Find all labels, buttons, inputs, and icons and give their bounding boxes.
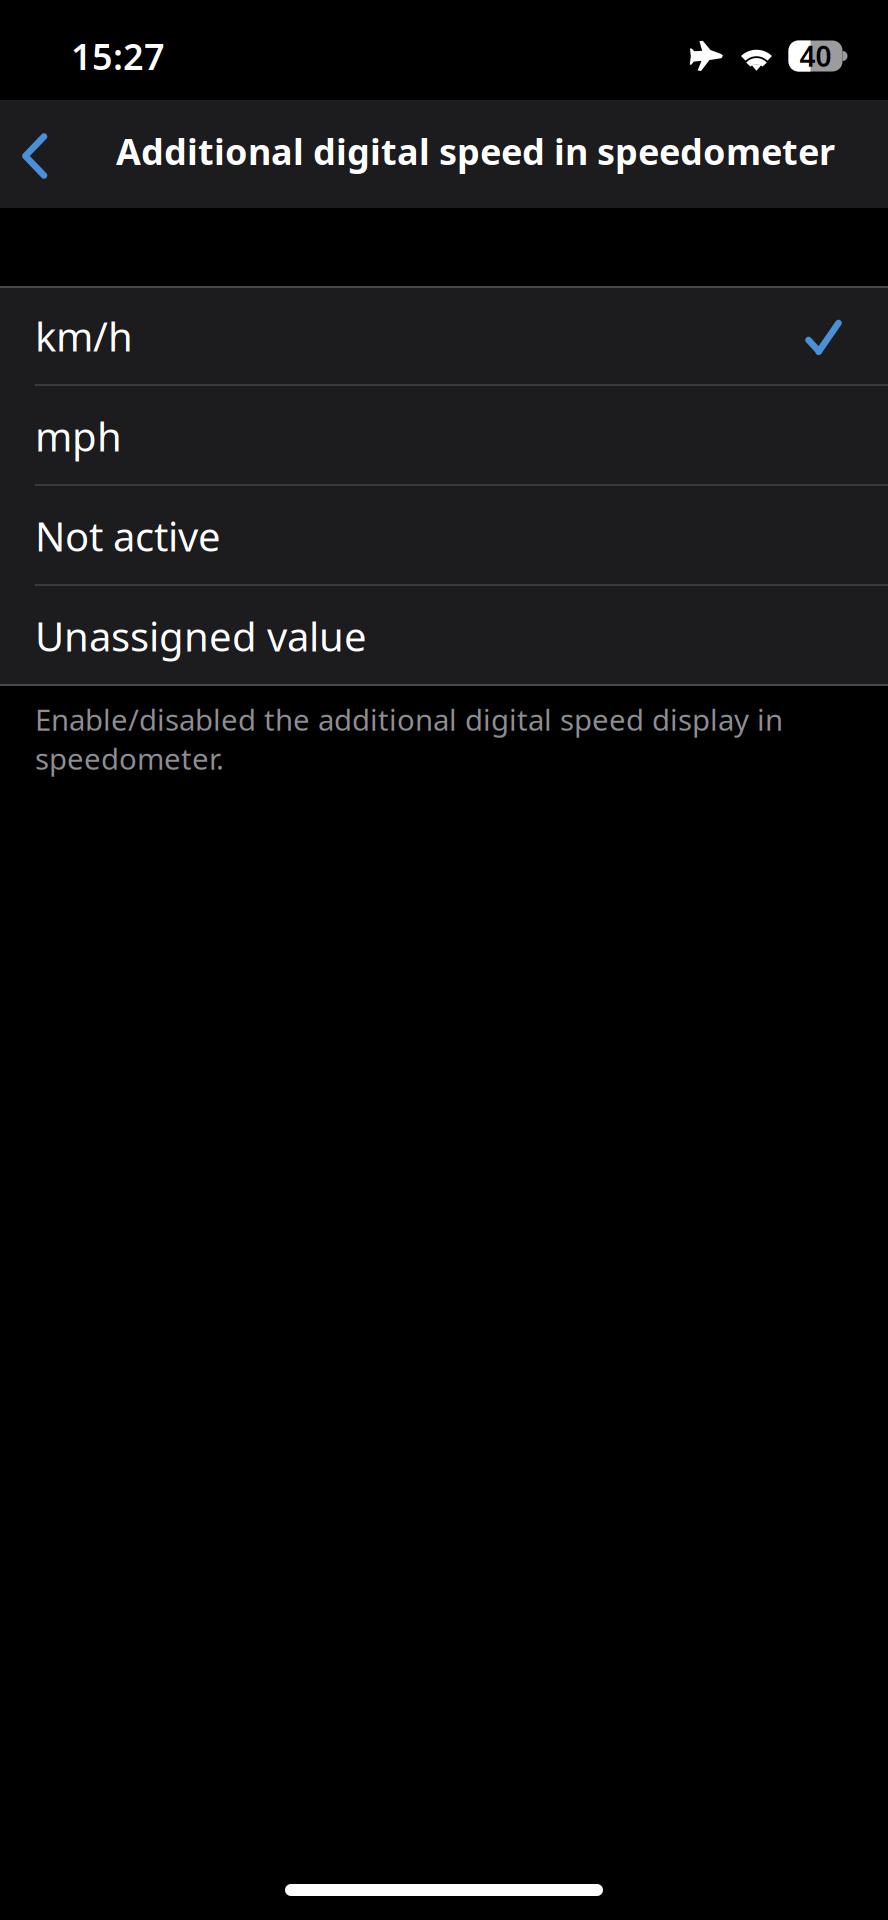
- button[interactable]: Back: [0, 100, 116, 208]
- staticText: Additional digital speed in speedometer: [116, 127, 835, 175]
- button[interactable]: mph: [0, 386, 888, 486]
- staticText: Unassigned value: [35, 609, 367, 662]
- staticText: 40: [799, 37, 831, 75]
- staticText: Not active: [35, 509, 221, 562]
- staticText: 15:27: [71, 32, 165, 80]
- button[interactable]: Not active: [0, 486, 888, 586]
- button[interactable]: Unassigned value: [0, 586, 888, 686]
- staticText: km/h: [35, 309, 133, 362]
- staticText: Enable/disabled the additional digital s…: [35, 700, 783, 778]
- button[interactable]: km/h: [0, 286, 888, 386]
- staticText: mph: [35, 409, 122, 462]
